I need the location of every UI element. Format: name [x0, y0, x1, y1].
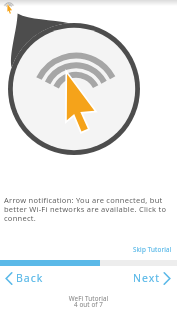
staticText: Arrow notification: You are connected, b…: [4, 195, 173, 223]
staticText: Skip Tutorial: [133, 245, 172, 254]
staticText: Next: [133, 271, 161, 285]
button[interactable]: Back: [0, 269, 50, 287]
button[interactable]: Skip Tutorial: [125, 242, 177, 260]
staticText: WeFi Tutorial 4 out of 7: [0, 294, 177, 309]
button[interactable]: Next: [127, 269, 177, 287]
staticText: Back: [16, 271, 44, 285]
